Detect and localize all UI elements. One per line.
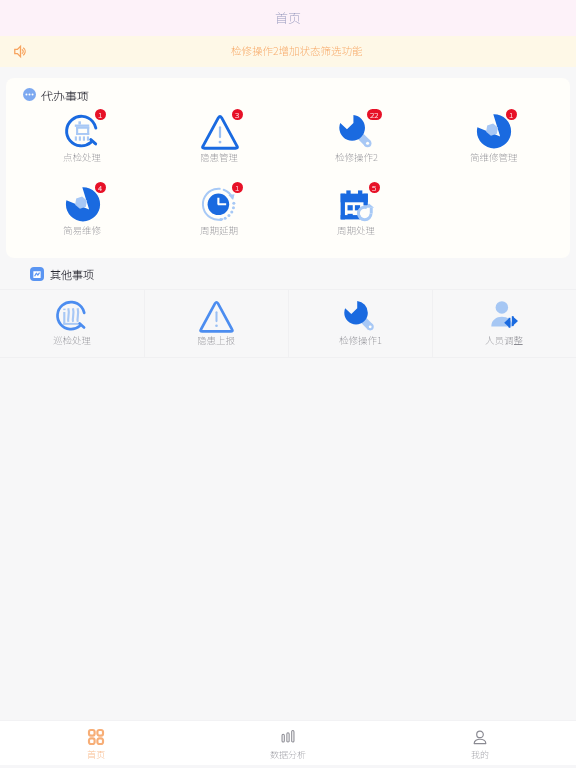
button[interactable]: 1 — [425, 114, 562, 164]
staticText: 其他事项 — [50, 266, 94, 282]
button[interactable]: 1 — [151, 187, 288, 237]
staticText: 代办事项 — [41, 87, 90, 101]
button[interactable]: 其他事项 — [30, 258, 576, 289]
button[interactable]: 1 — [14, 114, 151, 164]
staticText: 22 — [370, 109, 379, 120]
staticText: 5 — [372, 182, 377, 193]
staticText: 检修操作2增加状态筛选功能 — [231, 43, 363, 58]
button[interactable]: 代办事项 — [23, 87, 90, 101]
button[interactable]: 数据分析 — [192, 721, 384, 765]
button[interactable]: Announcement — [0, 36, 576, 67]
button[interactable]: 3 — [151, 114, 288, 164]
staticText: 隐患上报 — [197, 333, 236, 347]
button[interactable]: 22 — [288, 114, 425, 164]
staticText: 首页 — [87, 748, 106, 761]
button[interactable]: 4 — [14, 187, 151, 237]
button[interactable]: 隐患上报 — [145, 290, 288, 357]
button[interactable]: 我的 — [384, 721, 576, 765]
staticText: 4 — [98, 182, 103, 193]
button[interactable]: 人员调整 — [433, 290, 576, 357]
staticText: 1 — [235, 182, 240, 193]
staticText: 检修操作2 — [335, 150, 378, 164]
staticText: 简易维修 — [63, 223, 102, 237]
button[interactable]: 首页 — [0, 721, 192, 765]
staticText: 人员调整 — [485, 333, 524, 347]
staticText: 1 — [509, 109, 514, 120]
button[interactable]: 检修操作1 — [289, 290, 432, 357]
staticText: 点检处理 — [63, 150, 102, 164]
staticText: 巡检处理 — [53, 333, 92, 347]
staticText: 1 — [98, 109, 103, 120]
button[interactable]: 5 — [288, 187, 425, 237]
staticText: 简维修管理 — [470, 150, 518, 164]
staticText: 周期延期 — [200, 223, 239, 237]
staticText: 我的 — [471, 748, 490, 761]
staticText: 隐患管理 — [200, 150, 239, 164]
staticText: 数据分析 — [270, 748, 307, 761]
staticText: 3 — [235, 109, 240, 120]
staticText: 检修操作1 — [339, 333, 382, 347]
button[interactable]: 巡检处理 — [0, 290, 144, 357]
staticText: 首页 — [275, 8, 302, 27]
staticText: 周期处理 — [337, 223, 376, 237]
other: Announcement — [14, 45, 27, 58]
